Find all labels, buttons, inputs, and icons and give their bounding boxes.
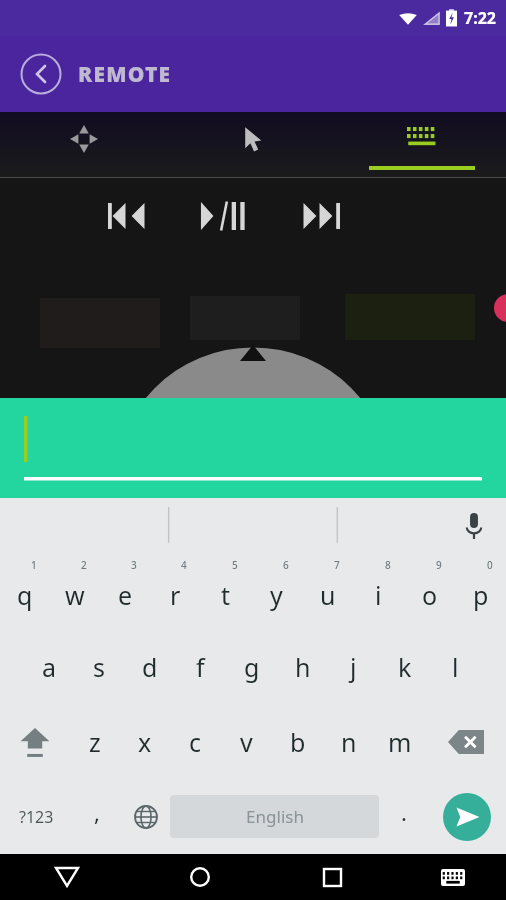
staticText: d — [142, 650, 158, 684]
button[interactable]: Back — [20, 53, 62, 95]
staticText: a — [42, 650, 57, 684]
staticText: k — [398, 650, 412, 684]
button[interactable]: Recents — [266, 854, 399, 900]
button[interactable]: m — [374, 704, 425, 779]
staticText: r — [170, 578, 181, 612]
button[interactable]: k — [379, 629, 430, 704]
staticText: b — [290, 725, 306, 759]
button[interactable]: n — [323, 704, 374, 779]
button[interactable]: 3 — [100, 554, 150, 629]
button[interactable]: b — [272, 704, 323, 779]
button[interactable]: Home — [133, 854, 266, 900]
staticText: f — [196, 650, 205, 684]
staticText: 0 — [487, 558, 493, 572]
button[interactable]: s — [74, 629, 124, 704]
staticText: 4 — [181, 558, 187, 572]
staticText: 8 — [385, 558, 391, 572]
staticText: h — [295, 650, 311, 684]
button[interactable]: . — [379, 779, 428, 854]
button[interactable]: j — [328, 629, 379, 704]
staticText: m — [388, 725, 412, 759]
button[interactable]: h — [277, 629, 328, 704]
staticText: 5 — [232, 558, 238, 572]
staticText: o — [422, 578, 438, 612]
button[interactable]: ?123 — [0, 779, 72, 854]
button[interactable]: Switch keyboard — [399, 854, 506, 900]
staticText: 1 — [31, 558, 37, 572]
button[interactable]: l — [430, 629, 481, 704]
button[interactable]: 6 — [251, 554, 302, 629]
button[interactable] — [0, 398, 506, 498]
staticText: i — [375, 578, 382, 612]
button[interactable]: , — [72, 779, 121, 854]
button[interactable]: z — [70, 704, 120, 779]
button[interactable]: Back — [0, 854, 133, 900]
button[interactable]: a — [24, 629, 74, 704]
button[interactable]: f — [175, 629, 226, 704]
button[interactable]: Keyboard — [337, 112, 506, 178]
staticText: n — [341, 725, 357, 759]
staticText: 7 — [334, 558, 340, 572]
staticText: u — [320, 578, 336, 612]
button[interactable]: 0 — [455, 554, 506, 629]
button[interactable]: Send — [428, 779, 506, 854]
button[interactable]: 4 — [150, 554, 200, 629]
button[interactable]: 5 — [200, 554, 251, 629]
button[interactable]: Next — [284, 186, 358, 246]
button[interactable]: Play pause — [184, 186, 264, 246]
button[interactable]: Shift — [0, 704, 70, 779]
staticText: 2 — [81, 558, 87, 572]
staticText: q — [17, 578, 33, 612]
button[interactable]: c — [170, 704, 221, 779]
button[interactable]: 1 — [0, 554, 50, 629]
staticText: English — [246, 805, 304, 828]
staticText: y — [270, 578, 283, 612]
staticText: 3 — [131, 558, 137, 572]
button[interactable]: x — [120, 704, 170, 779]
button[interactable]: d — [124, 629, 175, 704]
button[interactable]: 8 — [353, 554, 404, 629]
staticText: . — [401, 797, 407, 827]
staticText: 7:22 — [464, 7, 496, 29]
button[interactable]: 9 — [404, 554, 455, 629]
staticText: ?123 — [19, 806, 54, 828]
staticText: x — [138, 725, 152, 759]
staticText: 6 — [283, 558, 289, 572]
button[interactable]: 2 — [50, 554, 100, 629]
staticText: c — [189, 725, 202, 759]
button[interactable]: D-pad — [0, 112, 168, 178]
button[interactable]: Backspace — [425, 704, 506, 779]
button[interactable]: Voice input — [454, 506, 494, 546]
staticText: 9 — [436, 558, 442, 572]
staticText: REMOTE — [78, 60, 172, 89]
button[interactable]: English — [170, 795, 379, 838]
staticText: p — [473, 578, 489, 612]
button[interactable]: g — [226, 629, 277, 704]
button[interactable]: v — [221, 704, 272, 779]
staticText: v — [240, 725, 253, 759]
staticText: l — [452, 650, 459, 684]
staticText: w — [65, 578, 85, 612]
staticText: s — [93, 650, 105, 684]
button[interactable]: Change language — [121, 779, 170, 854]
staticText: j — [350, 650, 357, 684]
staticText: t — [221, 578, 231, 612]
button[interactable]: 7 — [302, 554, 353, 629]
staticText: e — [118, 578, 133, 612]
staticText: z — [89, 725, 101, 759]
button[interactable]: Previous — [90, 186, 164, 246]
staticText: , — [94, 797, 100, 827]
staticText: g — [244, 650, 260, 684]
button[interactable]: Touchpad — [168, 112, 337, 178]
